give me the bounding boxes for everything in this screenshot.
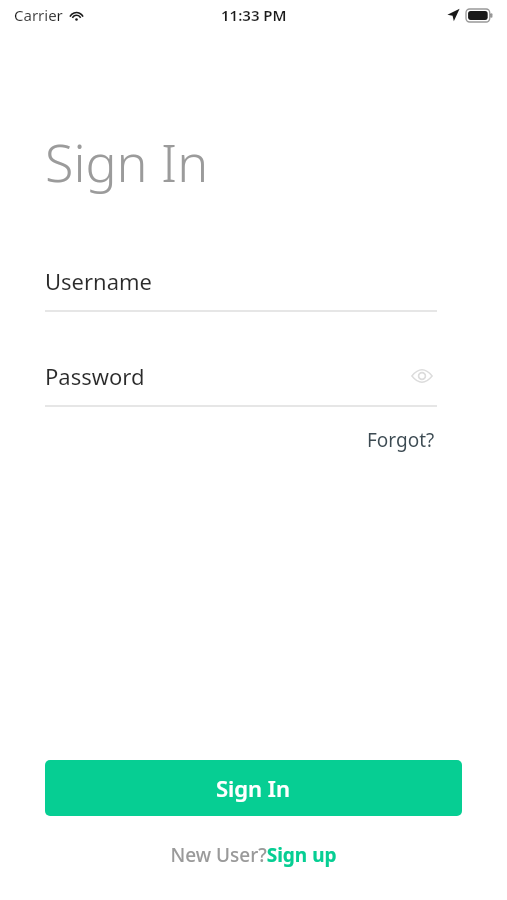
staticText: Forgot? xyxy=(367,427,435,453)
button[interactable]: New User?Sign up xyxy=(166,840,341,870)
button[interactable]: Show password xyxy=(407,361,437,391)
button[interactable]: Password xyxy=(45,357,437,395)
staticText: Sign In xyxy=(45,126,209,197)
staticText: Username xyxy=(45,266,153,296)
staticText: New User?Sign up xyxy=(170,842,337,868)
staticText: Carrier xyxy=(14,5,63,25)
button[interactable]: Username xyxy=(45,262,437,300)
staticText: 11:33 PM xyxy=(221,5,287,25)
staticText: Password xyxy=(45,361,145,391)
button[interactable]: Forgot? xyxy=(365,425,437,455)
button[interactable]: Sign In xyxy=(45,760,462,816)
staticText: Sign In xyxy=(216,773,291,803)
